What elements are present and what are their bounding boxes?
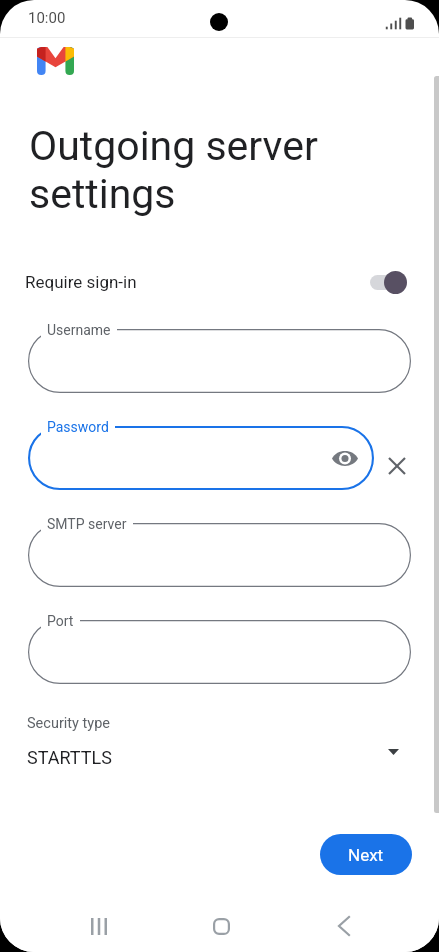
staticText: SMTP server — [47, 516, 127, 532]
button[interactable]: Port — [28, 620, 411, 684]
staticText: Next — [348, 845, 384, 865]
staticText: Password — [47, 419, 109, 435]
staticText: 10:00 — [28, 9, 66, 27]
button[interactable]: Recent apps — [75, 902, 123, 950]
button[interactable]: Require sign-in toggle — [369, 268, 417, 296]
staticText: Security type — [27, 715, 110, 732]
button[interactable]: Show password — [325, 438, 365, 478]
button[interactable]: Clear password — [381, 450, 413, 482]
button[interactable]: Require sign-in — [0, 254, 439, 310]
button[interactable]: Username — [28, 329, 411, 393]
staticText: Port — [47, 613, 74, 629]
button[interactable]: Next — [320, 834, 412, 875]
button[interactable]: Password — [28, 426, 374, 490]
staticText: STARTTLS — [27, 747, 112, 768]
button[interactable]: Back — [320, 902, 368, 950]
button[interactable]: SMTP server — [28, 523, 411, 587]
staticText: Require sign-in — [25, 272, 137, 292]
staticText: Outgoing server settings — [29, 122, 318, 218]
staticText: Username — [47, 322, 111, 338]
button[interactable]: Security type — [0, 706, 439, 778]
button[interactable]: Home — [197, 902, 245, 950]
